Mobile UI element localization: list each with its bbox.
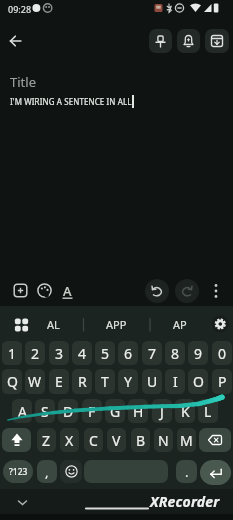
button[interactable] [177,29,200,53]
staticText: J [160,402,164,421]
button[interactable]: APP [88,311,144,338]
staticText: APP [106,317,127,332]
button[interactable] [8,311,35,338]
button[interactable]: 9 [188,341,208,365]
staticText: S [41,402,49,421]
button[interactable]: Z [37,428,56,452]
staticText: , [45,463,49,481]
button[interactable]: I [165,369,185,394]
button[interactable] [145,279,169,303]
button[interactable]: , [37,460,57,483]
button[interactable] [3,27,28,53]
staticText: 9 [194,344,203,363]
staticText: Z [42,431,51,450]
staticText: B [136,431,146,450]
button[interactable]: 4 [72,341,92,365]
button[interactable]: 8 [165,341,185,365]
button[interactable] [200,460,231,485]
button[interactable]: 5 [95,341,115,365]
staticText: 2 [31,344,40,363]
button[interactable] [204,279,228,303]
button[interactable]: 3 [49,341,69,365]
staticText: A [63,282,72,300]
staticText: H [133,402,144,421]
staticText: 0 [218,344,227,363]
staticText: N [158,431,169,450]
button[interactable]: 2 [25,341,45,365]
button[interactable]: V [107,428,126,452]
staticText: E [55,372,63,391]
button[interactable]: Y [118,369,138,394]
staticText: I'M WIRING A SENTENCE IN ALL [10,96,132,107]
button[interactable]: F [82,399,102,423]
button[interactable]: T [95,369,115,394]
button[interactable]: A [56,279,79,302]
button[interactable] [9,279,32,302]
button[interactable]: . [176,460,197,483]
button[interactable] [2,428,31,452]
staticText: Q [7,372,18,391]
button[interactable]: K [175,399,195,423]
staticText: ?123 [9,466,28,478]
button[interactable]: A [12,399,32,423]
staticText: 09:28 [8,3,32,15]
button[interactable]: J [152,399,172,423]
button[interactable]: 6 [118,341,138,365]
button[interactable]: R [72,369,92,394]
staticText: 8 [171,344,180,363]
button[interactable]: P [212,369,232,394]
button[interactable]: X [60,428,79,452]
staticText: . [185,463,189,481]
staticText: 4 [78,344,87,363]
button[interactable]: AP [155,311,205,338]
button[interactable]: B [131,428,150,452]
staticText: AP [173,317,187,332]
button[interactable]: 1 [2,341,22,365]
staticText: 1 [8,344,17,363]
button[interactable]: M [177,428,196,452]
staticText: M [180,431,193,450]
staticText: 3 [55,344,64,363]
button[interactable] [84,460,168,483]
staticText: W [28,372,42,391]
button[interactable] [60,460,82,483]
button[interactable] [32,279,55,302]
staticText: Title [10,73,36,91]
staticText: O [193,372,204,391]
button[interactable]: W [25,369,45,394]
staticText: C [89,431,98,450]
staticText: XRecorder [150,492,220,511]
staticText: A [18,402,27,421]
button[interactable] [149,29,172,53]
button[interactable]: L [198,399,218,423]
staticText: V [112,431,121,450]
button[interactable]: O [188,369,208,394]
button[interactable]: H [128,399,148,423]
staticText: P [218,372,227,391]
button[interactable] [175,279,199,303]
staticText: F [88,402,96,421]
button[interactable]: U [142,369,162,394]
button[interactable]: G [105,399,125,423]
staticText: X [65,431,74,450]
staticText: T [101,372,109,391]
button[interactable] [205,29,229,53]
staticText: 7 [148,344,157,363]
button[interactable]: ?123 [3,460,33,483]
button[interactable]: S [35,399,55,423]
staticText: I [173,372,178,391]
button[interactable]: C [84,428,103,452]
button[interactable]: D [58,399,78,423]
staticText: AL [47,317,60,332]
button[interactable]: Q [2,369,22,394]
button[interactable]: N [154,428,173,452]
button[interactable]: E [49,369,69,394]
staticText: K [181,402,190,421]
staticText: U [147,372,158,391]
button[interactable]: 7 [142,341,162,365]
button[interactable]: AL [30,311,76,338]
button[interactable]: 0 [212,341,232,365]
staticText: 5 [101,344,110,363]
button[interactable] [199,428,231,452]
staticText: R [78,372,87,391]
